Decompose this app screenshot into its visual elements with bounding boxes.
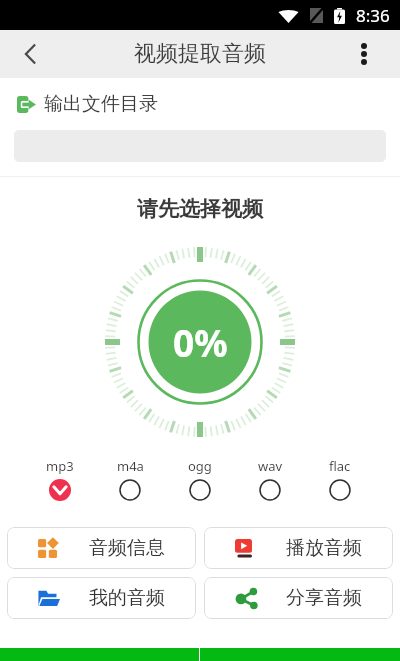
staticText: 8:36 (356, 4, 390, 27)
button[interactable]: 我的音频 (7, 577, 196, 619)
staticText: 播放音频 (286, 536, 362, 560)
staticText: mp3 (46, 457, 74, 475)
button[interactable]: Back (0, 30, 60, 78)
button[interactable]: 分享音频 (204, 577, 393, 619)
staticText: m4a (117, 457, 144, 475)
button[interactable]: 音频信息 (7, 527, 196, 569)
staticText: ogg (188, 457, 212, 475)
staticText: 0% (173, 317, 228, 367)
button[interactable]: ogg (165, 457, 235, 501)
button[interactable]: wav (235, 457, 305, 501)
staticText: 分享音频 (286, 586, 362, 610)
staticText: flac (329, 457, 351, 475)
button[interactable]: m4a (95, 457, 165, 501)
button[interactable]: mp3 (25, 457, 95, 501)
staticText: 音频信息 (89, 536, 165, 560)
button[interactable]: 播放音频 (204, 527, 393, 569)
staticText: 输出文件目录 (44, 92, 158, 116)
button[interactable]: 输出文件目录 (17, 92, 400, 116)
staticText: wav (258, 457, 283, 475)
staticText: 我的音频 (89, 586, 165, 610)
button[interactable]: More options (328, 30, 400, 78)
staticText: 请先选择视频 (0, 196, 400, 222)
staticText: 视频提取音频 (134, 40, 266, 68)
button[interactable]: flac (305, 457, 375, 501)
